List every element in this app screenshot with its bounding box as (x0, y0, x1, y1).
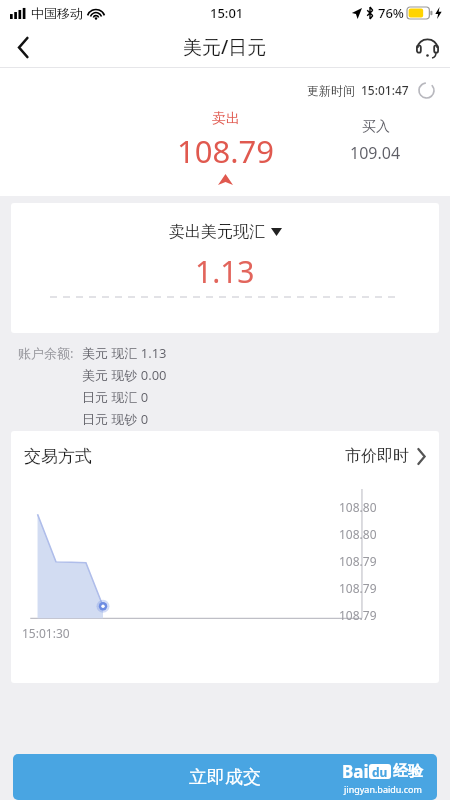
button[interactable]: Refresh (416, 80, 436, 100)
staticText: 美元 现钞 0.00 (82, 366, 167, 384)
staticText: 108.79 (339, 580, 377, 596)
staticText: 美元 现汇 1.13 (82, 344, 167, 362)
staticText: 卖出 (212, 110, 240, 128)
staticText: 15:01:47 (361, 82, 409, 98)
staticText: 中国移动 (31, 5, 83, 21)
button[interactable]: Customer service (404, 26, 450, 68)
staticText: 108.80 (339, 499, 377, 515)
staticText: 76% (378, 4, 404, 22)
staticText: 108.79 (339, 607, 377, 623)
staticText: 更新时间 (307, 83, 355, 98)
button[interactable]: Back (0, 26, 46, 68)
staticText: 市价即时 (345, 446, 409, 466)
staticText: 15:01 (210, 4, 244, 22)
staticText: 账户余额: (18, 344, 74, 362)
staticText: 108.79 (177, 130, 274, 172)
staticText: 买入 (362, 118, 390, 136)
staticText: 美元/日元 (183, 34, 267, 60)
staticText: du (372, 764, 388, 779)
staticText: 卖出美元现汇 (169, 222, 265, 242)
button[interactable]: 交易方式 (11, 431, 439, 481)
staticText: 经验 (393, 762, 423, 781)
staticText: 日元 现钞 0 (82, 410, 149, 428)
staticText: 日元 现汇 0 (82, 388, 149, 406)
staticText: 108.80 (339, 526, 377, 542)
button[interactable]: 立即成交 (13, 754, 437, 800)
staticText: 108.79 (339, 553, 377, 569)
staticText: 1.13 (195, 251, 255, 292)
staticText: Bai (342, 760, 369, 783)
staticText: 交易方式 (24, 446, 92, 467)
staticText: jingyan.baidu.com (344, 783, 422, 795)
button[interactable]: 卖出美元现汇 (169, 222, 282, 242)
staticText: 109.04 (350, 142, 401, 164)
staticText: 立即成交 (189, 766, 261, 789)
staticText: 15:01:30 (22, 625, 70, 641)
